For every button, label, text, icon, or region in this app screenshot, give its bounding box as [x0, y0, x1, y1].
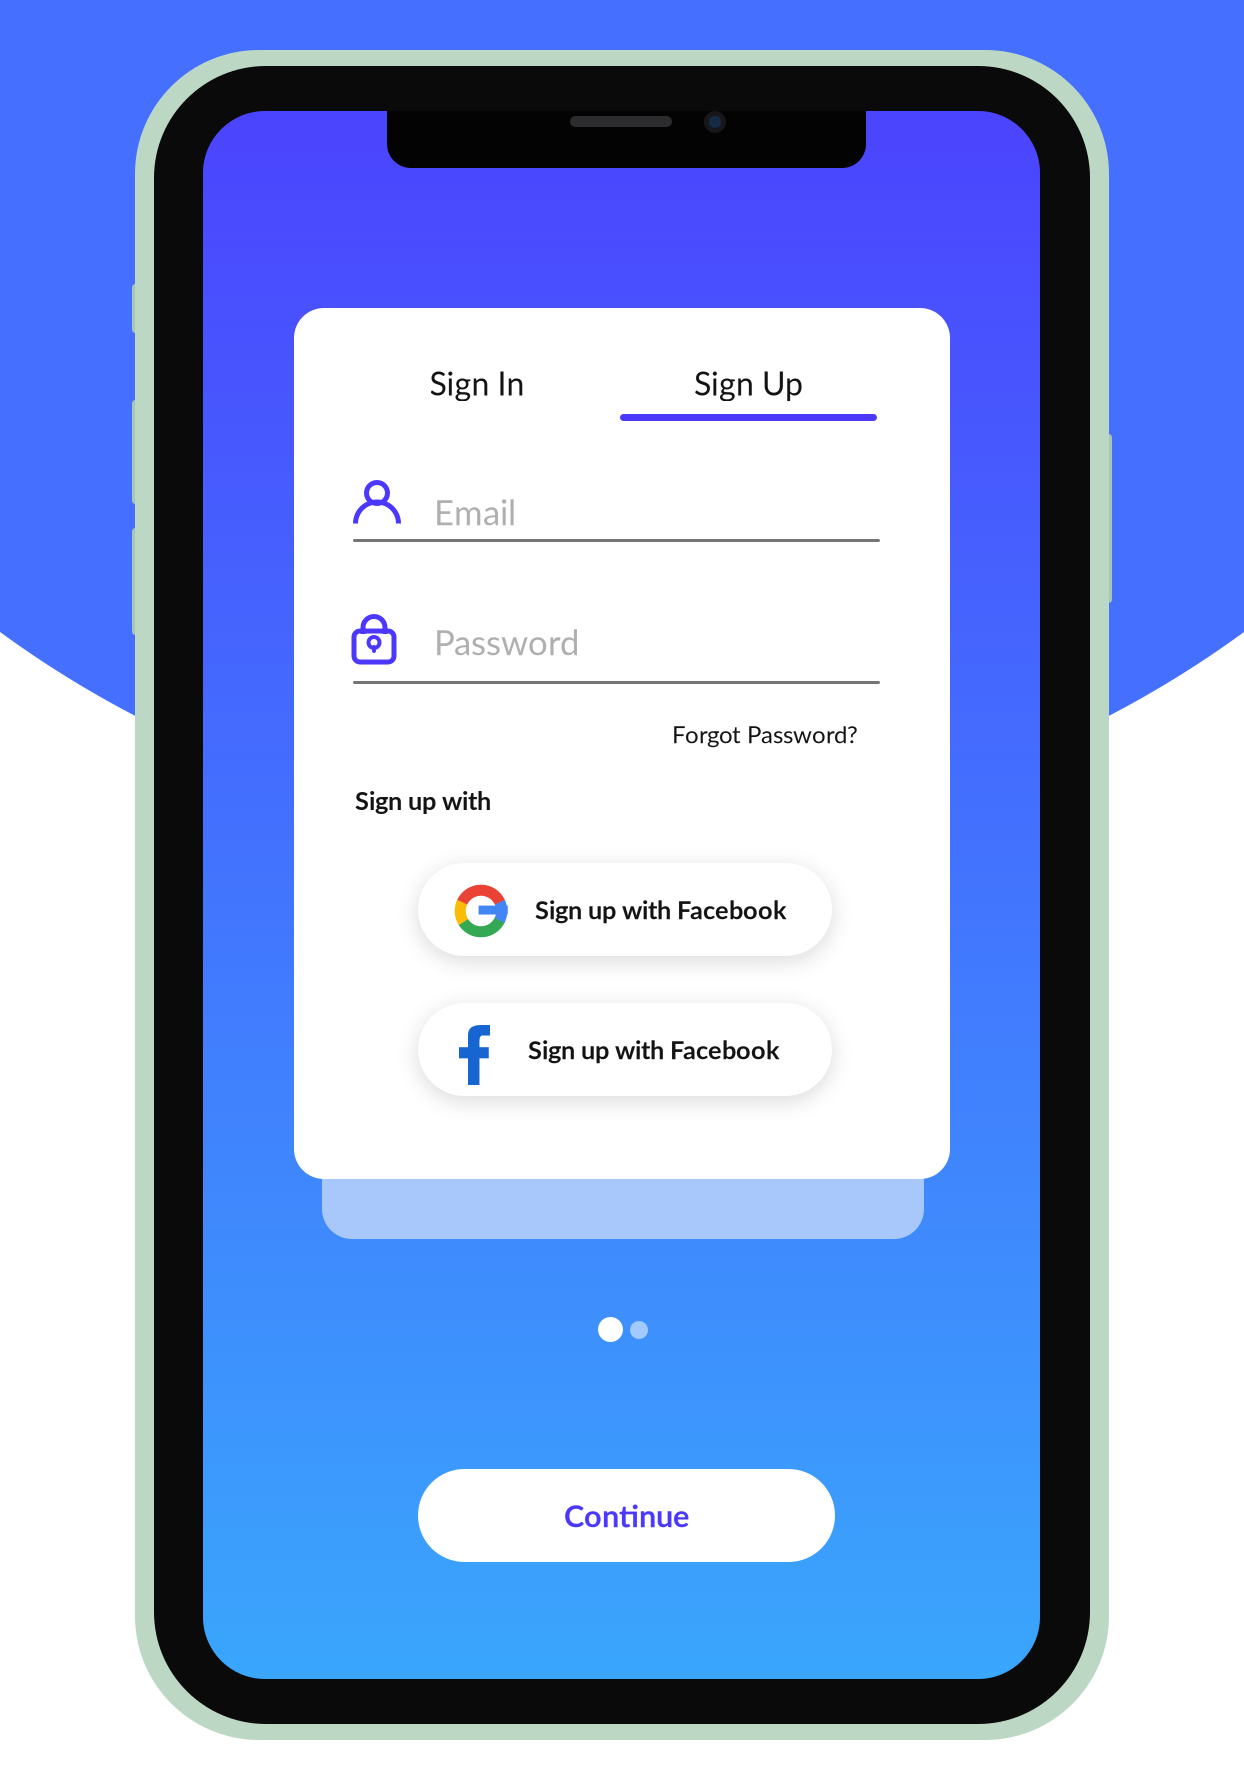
staticText: Sign up with Facebook: [528, 1034, 780, 1065]
button[interactable]: Sign Up: [620, 344, 877, 422]
button[interactable]: Sign In: [347, 344, 607, 422]
staticText: Sign up with Facebook: [535, 894, 787, 925]
button[interactable]: Forgot Password?: [658, 717, 858, 751]
button[interactable]: Sign up with Facebook: [418, 1003, 832, 1096]
staticText: Password: [434, 621, 579, 663]
button[interactable]: Sign up with Facebook: [418, 863, 832, 956]
staticText: Sign up with: [355, 785, 491, 815]
staticText: Continue: [564, 1497, 689, 1534]
button[interactable]: Continue: [418, 1469, 835, 1562]
staticText: Email: [434, 491, 516, 533]
staticText: Sign In: [429, 364, 524, 402]
staticText: Sign Up: [694, 364, 803, 402]
staticText: Forgot Password?: [672, 720, 858, 748]
